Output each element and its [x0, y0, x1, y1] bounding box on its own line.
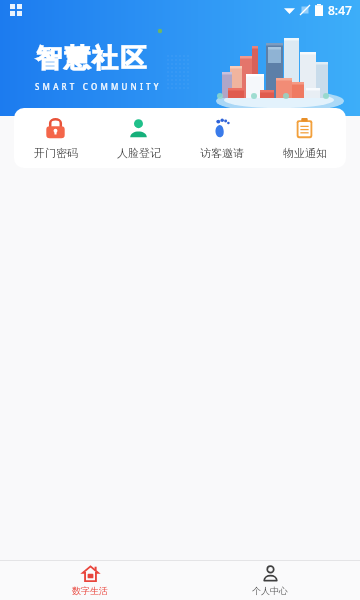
button[interactable]: 个人中心 — [180, 561, 360, 600]
staticText: 人脸登记 — [117, 146, 161, 160]
button[interactable]: 数字生活 — [0, 561, 180, 600]
staticText: SMART COMMUNITY — [35, 81, 162, 92]
staticText: 物业通知 — [283, 146, 327, 160]
button[interactable]: 人脸登记 — [97, 108, 180, 168]
button[interactable]: 开门密码 — [14, 108, 97, 168]
button[interactable]: 访客邀请 — [180, 108, 263, 168]
other: 个人中心 — [262, 565, 279, 582]
staticText: 数字生活 — [72, 585, 108, 596]
button[interactable]: 物业通知 — [263, 108, 346, 168]
other: 数字生活 — [82, 565, 99, 582]
staticText: 开门密码 — [34, 146, 78, 160]
staticText: 访客邀请 — [200, 146, 244, 160]
staticText: 智慧社区 — [35, 42, 147, 75]
staticText: 个人中心 — [252, 585, 288, 596]
staticText: 8:47 — [328, 2, 352, 18]
